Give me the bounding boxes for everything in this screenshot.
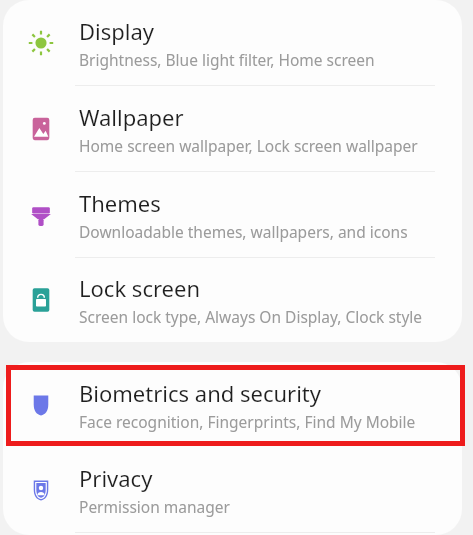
staticText: Face recognition, Fingerprints, Find My …: [79, 411, 416, 432]
button[interactable]: Display: [3, 0, 462, 86]
staticText: Brightness, Blue light filter, Home scre…: [79, 49, 375, 70]
button[interactable]: Themes: [3, 172, 462, 258]
button[interactable]: Privacy: [3, 447, 462, 533]
staticText: Privacy: [79, 463, 153, 493]
staticText: Display: [79, 16, 155, 46]
staticText: Permission manager: [79, 496, 230, 517]
button[interactable]: Biometrics and security: [3, 362, 462, 447]
button[interactable]: Wallpaper: [3, 86, 462, 172]
staticText: Lock screen: [79, 273, 201, 303]
staticText: Home screen wallpaper, Lock screen wallp…: [79, 135, 418, 156]
staticText: Downloadable themes, wallpapers, and ico…: [79, 221, 408, 242]
staticText: Wallpaper: [79, 102, 184, 132]
staticText: Themes: [79, 188, 161, 218]
button[interactable]: Lock screen: [3, 258, 462, 342]
staticText: Biometrics and security: [79, 378, 322, 408]
staticText: Screen lock type, Always On Display, Clo…: [79, 306, 423, 327]
